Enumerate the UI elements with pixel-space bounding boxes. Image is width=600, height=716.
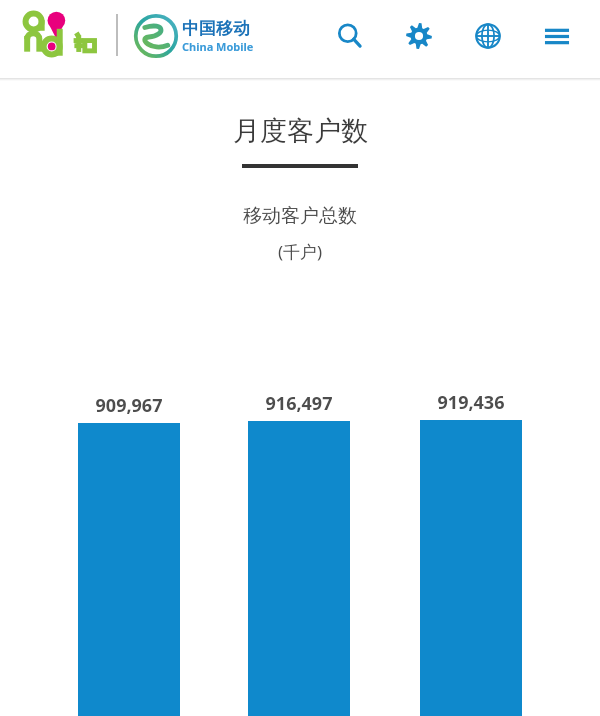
button[interactable]: Search — [330, 16, 370, 56]
staticText: 916,497 — [248, 391, 350, 416]
button[interactable]: Settings — [399, 16, 439, 56]
staticText: 909,967 — [78, 393, 180, 418]
button[interactable]: Menu — [537, 16, 577, 56]
button[interactable]: Language — [468, 16, 508, 56]
staticText: China Mobile — [182, 39, 254, 54]
staticText: 移动客户总数 — [243, 204, 357, 228]
staticText: 中国移动 — [182, 18, 250, 39]
button[interactable]: China Mobile — [134, 14, 254, 58]
staticText: 919,436 — [420, 390, 522, 415]
staticText: (千户) — [278, 240, 323, 263]
button[interactable] — [22, 8, 108, 60]
staticText: 月度客户数 — [233, 114, 368, 148]
